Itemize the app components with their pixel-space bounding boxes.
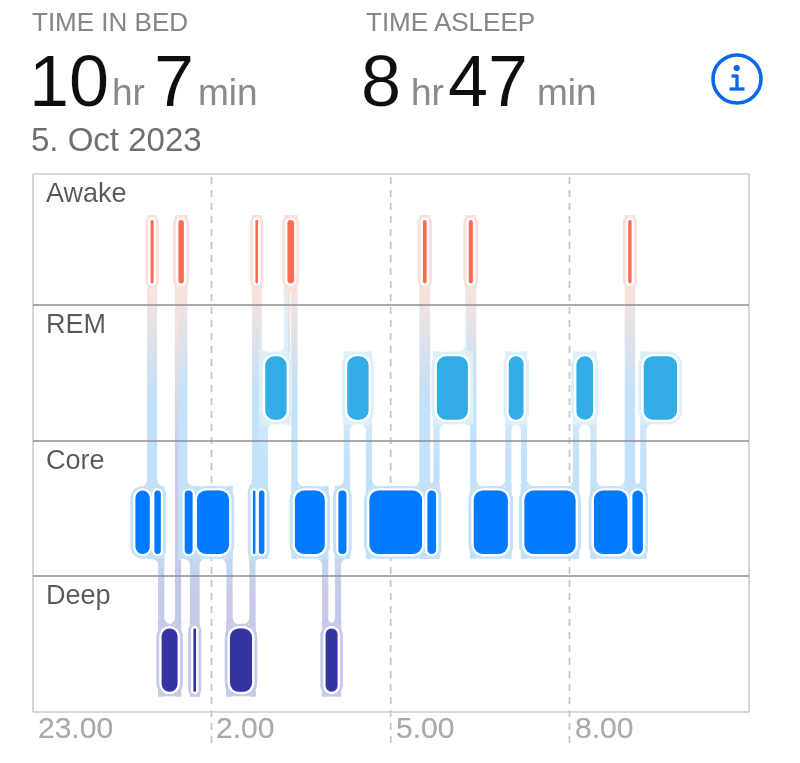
staticText: 2.00: [216, 711, 275, 745]
staticText: 47: [448, 41, 529, 121]
staticText: hr: [411, 72, 444, 113]
staticText: Awake: [46, 178, 127, 208]
staticText: min: [198, 72, 258, 113]
staticText: Core: [46, 445, 105, 475]
staticText: TIME ASLEEP: [366, 7, 536, 36]
button[interactable]: Information about sleep stages: [708, 50, 766, 108]
staticText: 7: [154, 41, 195, 121]
staticText: 8: [361, 41, 402, 121]
staticText: TIME IN BED: [32, 7, 189, 36]
staticText: hr: [112, 72, 145, 113]
staticText: 8.00: [575, 711, 634, 745]
staticText: 23.00: [38, 711, 114, 745]
staticText: min: [537, 72, 597, 113]
staticText: Deep: [46, 580, 111, 610]
staticText: 10: [29, 41, 110, 121]
staticText: 5. Oct 2023: [31, 121, 202, 158]
staticText: 5.00: [396, 711, 455, 745]
staticText: REM: [46, 309, 106, 339]
